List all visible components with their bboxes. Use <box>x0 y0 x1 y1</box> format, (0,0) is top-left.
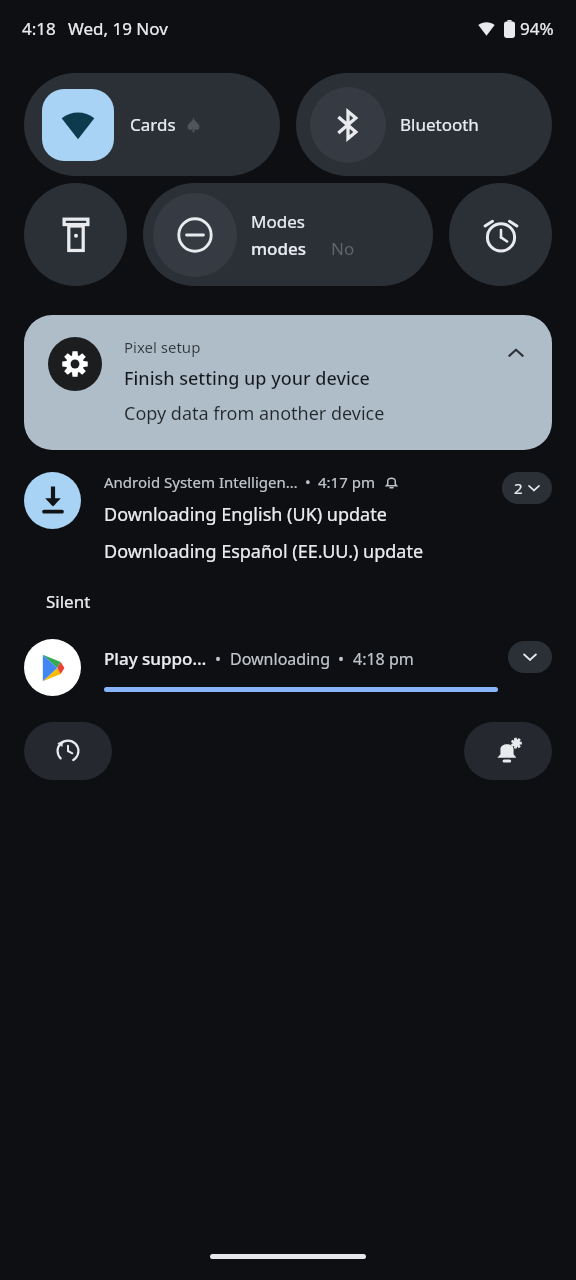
staticText: Cards <box>130 113 176 136</box>
staticText: No <box>331 237 355 260</box>
staticText: 4:18 pm <box>353 648 414 670</box>
staticText: 4:17 pm <box>318 472 375 492</box>
button[interactable]: Modes <box>143 183 433 286</box>
staticText: Silent <box>46 590 91 613</box>
button[interactable]: Play suppo… <box>24 639 552 696</box>
staticText: Copy data from another device <box>124 401 385 426</box>
button[interactable]: Alarm <box>449 183 552 286</box>
button[interactable]: Notification history <box>24 722 112 780</box>
staticText: Android System Intelligen… <box>104 472 298 492</box>
staticText: Bluetooth <box>400 113 479 136</box>
button[interactable]: Bluetooth <box>296 73 552 176</box>
button[interactable]: Notification settings <box>464 722 552 780</box>
staticText: 94% <box>520 17 554 40</box>
staticText: Finish setting up your device <box>124 366 370 391</box>
button[interactable]: Expand <box>508 641 552 673</box>
staticText: Modes <box>251 210 305 233</box>
staticText: 4:18 <box>22 17 56 40</box>
staticText: Downloading English (UK) update <box>104 502 387 527</box>
staticText: • <box>338 648 345 670</box>
staticText: • <box>215 648 222 670</box>
staticText: 2 <box>514 478 523 498</box>
staticText: modes <box>251 237 307 260</box>
button[interactable]: Pixel setup <box>24 315 552 450</box>
staticText: Wed, 19 Nov <box>68 17 168 40</box>
staticText: Pixel setup <box>124 337 201 357</box>
button[interactable]: Flashlight <box>24 183 127 286</box>
button[interactable]: Android System Intelligen… <box>24 472 552 564</box>
staticText: Play suppo… <box>104 647 207 670</box>
staticText: • <box>305 472 311 492</box>
button[interactable]: Collapse <box>500 337 532 369</box>
button[interactable]: Cards <box>24 73 280 176</box>
staticText: Downloading <box>230 648 330 670</box>
staticText: Downloading Español (EE.UU.) update <box>104 539 424 564</box>
button[interactable]: 2 <box>502 472 552 504</box>
